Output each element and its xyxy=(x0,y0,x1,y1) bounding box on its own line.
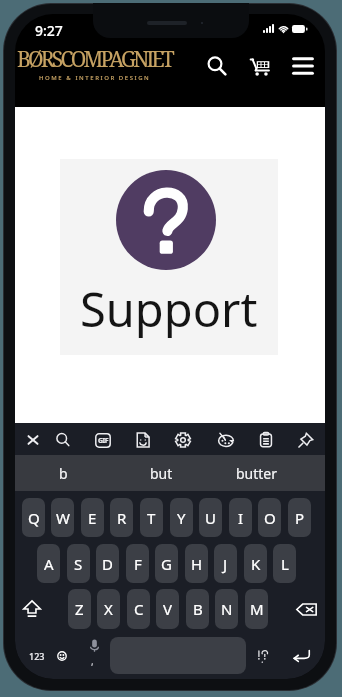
button[interactable]: Backspace xyxy=(296,589,317,629)
button[interactable]: Stickers xyxy=(128,425,158,455)
button[interactable]: Menu xyxy=(287,50,319,82)
button[interactable]: V xyxy=(156,589,179,629)
staticText: K xyxy=(251,554,261,574)
button[interactable]: S xyxy=(67,544,90,583)
staticText: Support xyxy=(80,277,258,341)
staticText: J xyxy=(223,554,228,574)
staticText: Q xyxy=(28,508,40,528)
button[interactable]: B xyxy=(186,589,209,629)
button[interactable]: P xyxy=(288,498,311,537)
button[interactable]: Search xyxy=(48,425,78,455)
button[interactable]: but xyxy=(123,455,199,491)
staticText: 123 xyxy=(29,650,45,662)
button[interactable]: U xyxy=(199,498,222,537)
button[interactable]: L xyxy=(273,544,296,583)
staticText: C xyxy=(134,599,144,619)
staticText: X xyxy=(104,599,113,619)
staticText: D xyxy=(102,554,113,574)
button[interactable]: X xyxy=(97,589,120,629)
button[interactable]: F xyxy=(126,544,149,583)
button[interactable]: J xyxy=(214,544,237,583)
staticText: O xyxy=(264,508,276,528)
button[interactable]: Clipboard xyxy=(251,425,281,455)
staticText: S xyxy=(74,554,83,574)
button[interactable]: K xyxy=(244,544,267,583)
staticText: M xyxy=(250,599,264,619)
button[interactable]: Pin toolbar xyxy=(291,425,321,455)
staticText: V xyxy=(163,599,173,619)
button[interactable]: A xyxy=(37,544,60,583)
staticText: GIF xyxy=(98,436,109,446)
button[interactable]: T xyxy=(140,498,163,537)
button[interactable]: Y xyxy=(170,498,193,537)
button[interactable]: Emoji xyxy=(50,637,74,674)
staticText: G xyxy=(161,554,172,574)
button[interactable]: Settings xyxy=(168,425,198,455)
staticText: but xyxy=(150,464,173,483)
staticText: R xyxy=(117,508,127,528)
staticText: U xyxy=(205,508,216,528)
button[interactable]: Numbers xyxy=(25,637,49,674)
staticText: Y xyxy=(177,508,186,528)
staticText: HOME & INTERIOR DESIGN xyxy=(39,74,151,82)
button[interactable]: E xyxy=(81,498,104,537)
button[interactable]: Support xyxy=(60,159,278,355)
button[interactable]: GIF xyxy=(88,425,118,455)
button[interactable]: Enter xyxy=(289,637,313,674)
button[interactable]: Themes xyxy=(211,425,241,455)
button[interactable]: H xyxy=(185,544,208,583)
button[interactable]: W xyxy=(51,498,74,537)
button[interactable]: Search xyxy=(201,50,233,82)
staticText: A xyxy=(44,554,54,574)
button[interactable]: Shopping cart xyxy=(244,50,276,82)
button[interactable]: R xyxy=(110,498,133,537)
staticText: T xyxy=(147,508,156,528)
button[interactable]: b xyxy=(25,455,101,491)
staticText: B xyxy=(193,599,203,619)
staticText: F xyxy=(134,554,142,574)
button[interactable]: Voice input xyxy=(82,628,106,662)
staticText: E xyxy=(88,508,97,528)
staticText: N xyxy=(221,599,233,619)
button[interactable]: Shift xyxy=(22,589,41,629)
button[interactable]: N xyxy=(215,589,238,629)
staticText: P xyxy=(295,508,305,528)
button[interactable]: Space xyxy=(110,637,246,674)
button[interactable]: butter xyxy=(219,455,295,491)
staticText: W xyxy=(56,508,70,528)
button[interactable]: Q xyxy=(22,498,45,537)
button[interactable]: O xyxy=(258,498,281,537)
staticText: 9:27 xyxy=(35,21,63,40)
button[interactable]: D xyxy=(96,544,119,583)
staticText: b xyxy=(59,464,68,483)
button[interactable]: Z xyxy=(68,589,91,629)
staticText: L xyxy=(281,554,289,574)
staticText: BØRSCOMPAGNIET xyxy=(17,45,172,74)
button[interactable]: I xyxy=(229,498,252,537)
button[interactable]: Punctuation xyxy=(251,637,275,674)
staticText: butter xyxy=(236,464,278,483)
staticText: H xyxy=(191,554,203,574)
button[interactable]: G xyxy=(155,544,178,583)
staticText: Z xyxy=(75,599,84,619)
staticText: I xyxy=(238,508,244,528)
button[interactable]: C xyxy=(127,589,150,629)
staticText: . xyxy=(261,652,264,666)
button[interactable]: M xyxy=(245,589,268,629)
staticText: , xyxy=(91,654,94,668)
button[interactable]: Close keyboard xyxy=(18,425,48,455)
